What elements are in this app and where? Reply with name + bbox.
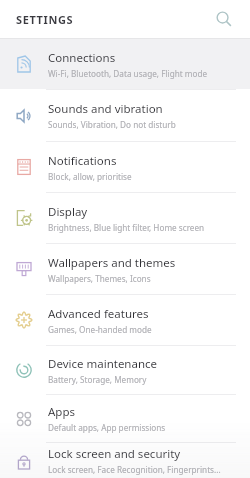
button[interactable]: Search <box>210 5 238 33</box>
staticText: Notifications <box>48 153 117 169</box>
staticText: Lock screen, Face Recognition, Fingerpri… <box>48 464 221 475</box>
staticText: Block, allow, prioritise <box>48 171 132 182</box>
button[interactable]: Wallpapers and themes <box>0 244 250 294</box>
staticText: Games, One-handed mode <box>48 324 152 335</box>
button[interactable]: Advanced features <box>0 295 250 345</box>
staticText: SETTINGS <box>16 12 74 27</box>
staticText: Wallpapers and themes <box>48 255 176 271</box>
staticText: Connections <box>48 50 116 66</box>
staticText: Wi-Fi, Bluetooth, Data usage, Flight mod… <box>48 68 208 79</box>
button[interactable]: Sounds and vibration <box>0 90 250 141</box>
staticText: Apps <box>48 404 76 420</box>
button[interactable]: Notifications <box>0 142 250 192</box>
button[interactable]: Connections <box>0 39 250 89</box>
staticText: Lock screen and security <box>48 446 181 462</box>
staticText: Advanced features <box>48 306 149 322</box>
staticText: Sounds, Vibration, Do not disturb <box>48 119 176 130</box>
staticText: Battery, Storage, Memory <box>48 374 147 385</box>
button[interactable]: Lock screen and security <box>0 443 250 478</box>
staticText: Wallpapers, Themes, Icons <box>48 273 151 284</box>
staticText: Device maintenance <box>48 356 158 372</box>
button[interactable]: Apps <box>0 395 250 442</box>
button[interactable]: Display <box>0 193 250 243</box>
staticText: Sounds and vibration <box>48 101 163 117</box>
button[interactable]: Device maintenance <box>0 346 250 394</box>
staticText: Display <box>48 204 88 220</box>
staticText: Default apps, App permissions <box>48 422 166 433</box>
staticText: Brightness, Blue light filter, Home scre… <box>48 222 205 233</box>
